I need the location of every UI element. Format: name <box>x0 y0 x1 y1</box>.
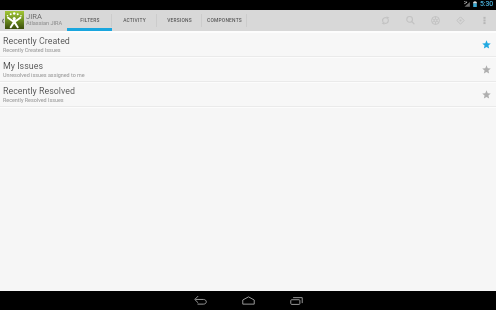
button[interactable]: FILTERS <box>67 10 112 31</box>
staticText: Recently Resolved <box>3 86 75 96</box>
button[interactable]: Refresh <box>373 10 398 31</box>
button[interactable]: My Issues <box>0 58 496 81</box>
staticText: Atlassian JIRA <box>26 20 63 27</box>
button[interactable]: Favourite <box>477 33 496 56</box>
staticText: ACTIVITY <box>123 17 146 23</box>
button[interactable]: Recently Created <box>0 33 496 56</box>
button[interactable]: ACTIVITY <box>112 10 157 31</box>
button[interactable]: More options <box>472 10 496 31</box>
button[interactable]: Favourite <box>477 83 496 106</box>
button[interactable]: Filters <box>448 10 472 31</box>
staticText: FILTERS <box>80 17 100 23</box>
button[interactable]: Home <box>237 291 259 310</box>
staticText: My Issues <box>3 61 43 71</box>
button[interactable]: Back <box>189 291 211 310</box>
staticText: Recently Resolved Issues <box>3 97 64 103</box>
staticText: COMPONENTS <box>207 17 242 23</box>
button[interactable]: Recently Resolved <box>0 83 496 106</box>
button[interactable]: COMPONENTS <box>202 10 247 31</box>
button[interactable]: Search <box>398 10 423 31</box>
staticText: Recently Created Issues <box>3 47 61 53</box>
staticText: Unresolved issues assigned to me <box>3 72 85 78</box>
staticText: Recently Created <box>3 36 70 46</box>
button[interactable]: VERSIONS <box>157 10 202 31</box>
button[interactable]: Dashboard <box>423 10 448 31</box>
staticText: VERSIONS <box>167 17 192 23</box>
button[interactable]: Recent apps <box>285 291 307 310</box>
button[interactable]: Favourite <box>477 58 496 81</box>
button[interactable]: Navigate up <box>0 10 5 31</box>
staticText: 5:30 <box>480 0 494 8</box>
staticText: JIRA <box>26 12 42 21</box>
